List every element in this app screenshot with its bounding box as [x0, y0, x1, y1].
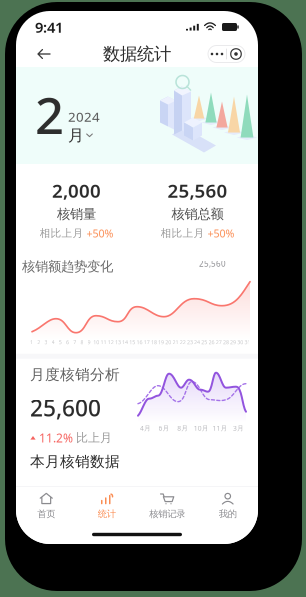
button[interactable]: 我的 — [197, 488, 258, 524]
staticText: 11月 — [212, 424, 227, 433]
staticText: 30 — [237, 339, 243, 346]
staticText: 22 — [180, 339, 186, 346]
staticText: 11 — [100, 339, 106, 346]
staticText: 25,600 — [30, 393, 101, 423]
staticText: 25,560 — [167, 178, 227, 203]
staticText: 27 — [216, 339, 222, 346]
staticText: 核销额趋势变化 — [22, 258, 113, 275]
staticText: 1 — [30, 339, 33, 346]
staticText: 10月 — [194, 424, 209, 433]
staticText: 8月 — [177, 424, 188, 433]
staticText: 2 — [35, 81, 64, 148]
staticText: 15 — [129, 339, 135, 346]
button[interactable]: 核销记录 — [137, 488, 197, 524]
staticText: 相比上月 — [160, 227, 204, 240]
staticText: +50% — [207, 226, 234, 240]
staticText: 统计 — [98, 508, 116, 520]
button[interactable]: 2 — [16, 81, 100, 150]
button[interactable]: 更多 — [208, 45, 245, 62]
staticText: 5 — [59, 339, 62, 346]
staticText: 月度核销分析 — [30, 366, 120, 384]
button[interactable]: 首页 — [16, 488, 76, 524]
staticText: 14 — [122, 339, 128, 346]
staticText: 25 — [201, 339, 207, 346]
staticText: 相比上月 — [39, 227, 83, 240]
staticText: 20 — [165, 339, 171, 346]
staticText: 7 — [73, 339, 76, 346]
staticText: 2024 — [68, 108, 100, 125]
staticText: 9 — [88, 339, 91, 346]
staticText: 月 — [68, 125, 84, 145]
staticText: 16 — [136, 339, 142, 346]
staticText: 我的 — [219, 508, 237, 520]
staticText: 4 — [52, 339, 55, 346]
staticText: 首页 — [37, 508, 55, 520]
staticText: 10 — [93, 339, 99, 346]
staticText: +50% — [86, 226, 113, 240]
staticText: 2 — [37, 339, 40, 346]
staticText: 13 — [115, 339, 121, 346]
staticText: 19 — [158, 339, 164, 346]
staticText: 11.2% — [39, 430, 73, 446]
staticText: 8 — [80, 339, 83, 346]
staticText: 18 — [151, 339, 157, 346]
staticText: 21 — [172, 339, 178, 346]
staticText: 核销总额 — [171, 206, 223, 222]
staticText: 比上月 — [76, 430, 112, 445]
staticText: 4月 — [140, 424, 151, 433]
staticText: 6 — [66, 339, 69, 346]
staticText: 本月核销数据 — [30, 453, 120, 471]
staticText: 9:41 — [35, 17, 63, 37]
staticText: 25,560 — [199, 258, 226, 269]
staticText: 17 — [144, 339, 150, 346]
staticText: 3月 — [233, 424, 244, 433]
staticText: 26 — [208, 339, 214, 346]
staticText: 核销量 — [57, 206, 96, 222]
staticText: 28 — [223, 339, 229, 346]
staticText: 29 — [230, 339, 236, 346]
staticText: 2,000 — [52, 178, 101, 203]
staticText: 23 — [187, 339, 193, 346]
staticText: 核销记录 — [149, 508, 185, 520]
staticText: 6月 — [159, 424, 170, 433]
button[interactable]: 统计 — [76, 488, 137, 524]
staticText: 24 — [194, 339, 200, 346]
button[interactable]: 返回 — [29, 43, 59, 65]
staticText: 31 — [244, 339, 250, 346]
staticText: 数据统计 — [103, 43, 171, 65]
staticText: 3 — [44, 339, 47, 346]
staticText: 12 — [108, 339, 114, 346]
